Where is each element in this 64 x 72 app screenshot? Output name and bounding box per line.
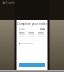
staticText: Complete your order <box>17 22 47 26</box>
staticText: Sell online with ease <box>2 1 32 5</box>
button[interactable] <box>16 43 47 44</box>
button[interactable] <box>16 63 47 67</box>
